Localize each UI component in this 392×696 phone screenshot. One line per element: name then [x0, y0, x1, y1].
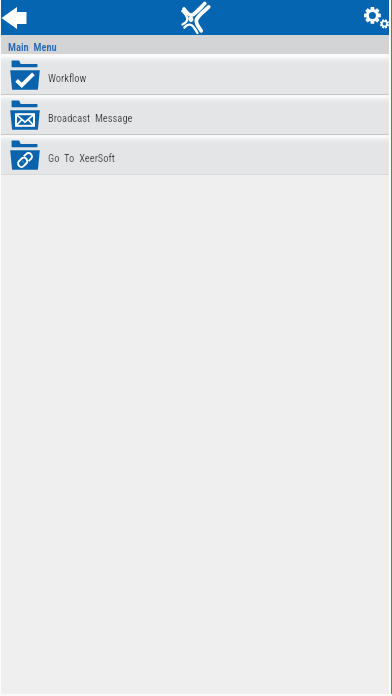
staticText: Broadcast Message — [48, 112, 133, 124]
staticText: Main Menu — [8, 41, 57, 53]
button[interactable]: Settings — [358, 0, 392, 35]
button[interactable]: Broadcast Message — [0, 96, 392, 134]
button[interactable]: Back — [0, 0, 34, 35]
button[interactable]: Go To XeerSoft — [0, 136, 392, 174]
button[interactable]: Workflow — [0, 56, 392, 94]
staticText: Workflow — [48, 72, 87, 84]
staticText: Go To XeerSoft — [48, 152, 115, 164]
